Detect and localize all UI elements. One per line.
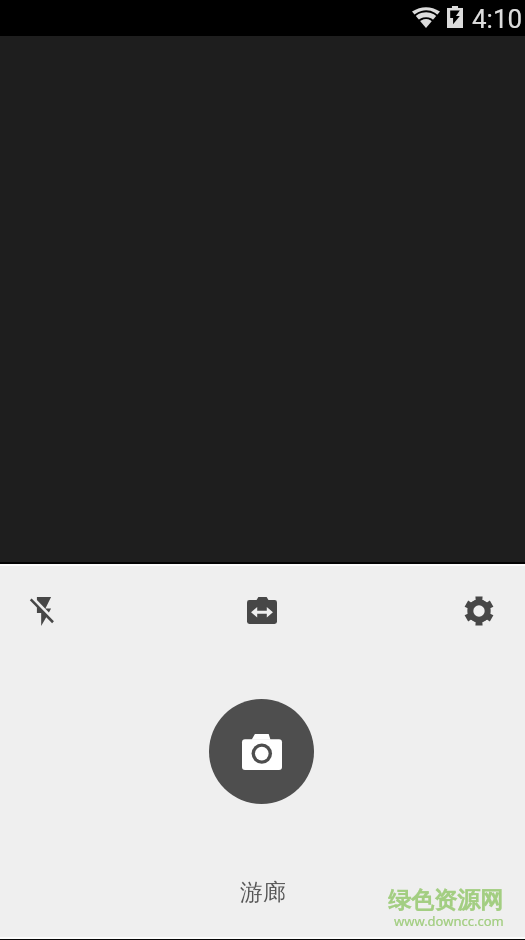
staticText: 绿色资源网 — [388, 886, 503, 915]
staticText: 游廊 — [240, 878, 286, 907]
staticText: www.downcc.com — [394, 912, 504, 930]
button[interactable]: Take photo — [209, 699, 314, 804]
button[interactable]: Flash off — [12, 579, 76, 643]
button[interactable]: Switch camera — [230, 578, 294, 642]
button[interactable]: 游廊 — [0, 874, 525, 910]
button[interactable]: Settings — [447, 579, 511, 643]
staticText: 4:10 — [472, 4, 523, 34]
